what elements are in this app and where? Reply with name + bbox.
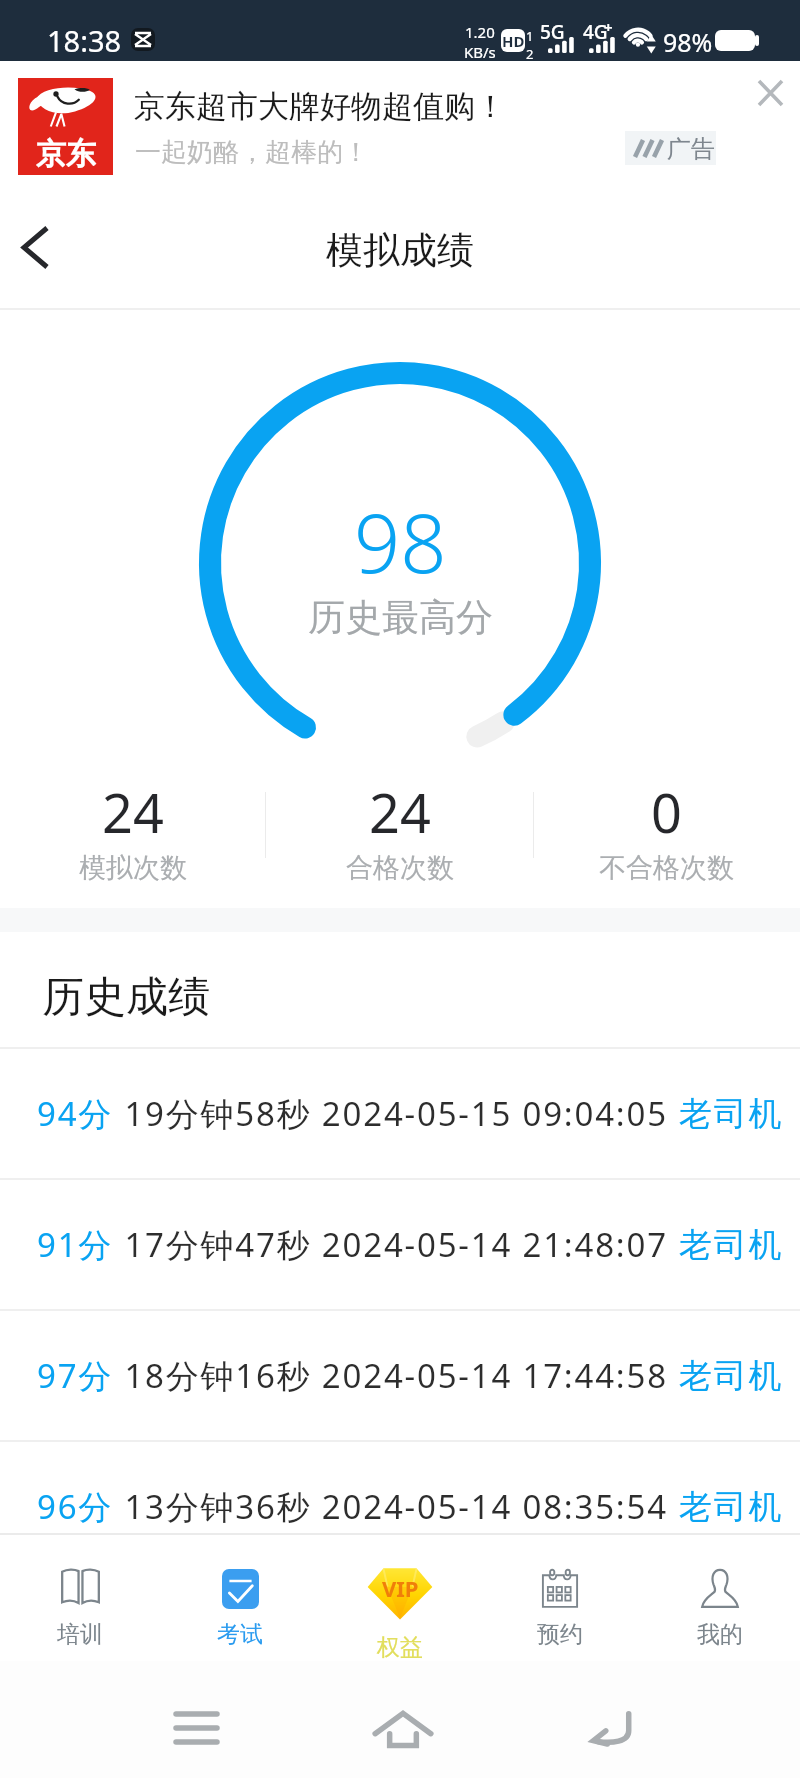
staticText: 广告 xyxy=(667,134,715,164)
staticText: KB/s xyxy=(464,42,496,62)
staticText: 17分钟47秒 2024-05-14 21:48:07 xyxy=(114,1222,679,1267)
staticText: 98% xyxy=(663,25,713,59)
staticText: 不合格次数 xyxy=(599,851,734,885)
button[interactable]: Back xyxy=(571,1687,651,1767)
staticText: 培训 xyxy=(57,1620,103,1649)
staticText: 老司机 xyxy=(679,1224,784,1266)
button[interactable]: 培训 xyxy=(0,1535,160,1661)
staticText: 98 xyxy=(354,486,447,596)
staticText: 4G xyxy=(583,19,608,45)
staticText: 老司机 xyxy=(679,1093,784,1135)
button[interactable]: 94分 xyxy=(0,1048,800,1178)
staticText: VIP xyxy=(382,1573,419,1603)
staticText: 合格次数 xyxy=(346,851,454,885)
button[interactable]: Recent apps xyxy=(156,1688,236,1768)
button[interactable]: 97分 xyxy=(0,1310,800,1440)
staticText: 历史成绩 xyxy=(42,971,210,1024)
button[interactable]: 24 xyxy=(266,775,533,885)
staticText: 94分 xyxy=(37,1091,114,1136)
button[interactable]: Close ad xyxy=(744,67,796,119)
button[interactable]: 我的 xyxy=(640,1535,800,1661)
staticText: HD xyxy=(502,31,525,51)
staticText: + xyxy=(604,17,613,37)
button[interactable]: VIP xyxy=(320,1535,480,1661)
staticText: 1.20 xyxy=(465,22,495,42)
staticText: 19分钟58秒 2024-05-15 09:04:05 xyxy=(114,1091,679,1136)
staticText: 18:38 xyxy=(47,21,122,60)
staticText: 京东 xyxy=(36,135,96,173)
staticText: 0 xyxy=(651,775,682,849)
button[interactable]: 24 xyxy=(0,775,266,885)
staticText: 96分 xyxy=(37,1484,114,1529)
staticText: 18分钟16秒 2024-05-14 17:44:58 xyxy=(114,1353,679,1398)
button[interactable]: 91分 xyxy=(0,1179,800,1309)
staticText: 24 xyxy=(102,775,164,849)
staticText: 老司机 xyxy=(679,1355,784,1397)
staticText: 2 xyxy=(526,45,534,63)
button[interactable]: 0 xyxy=(533,775,800,885)
staticText: 模拟成绩 xyxy=(326,227,474,274)
button[interactable]: 96分 xyxy=(0,1441,800,1571)
staticText: 模拟次数 xyxy=(79,851,187,885)
staticText: 预约 xyxy=(537,1620,583,1649)
staticText: 老司机 xyxy=(679,1486,784,1528)
button[interactable]: 考试 xyxy=(160,1535,320,1661)
staticText: 权益 xyxy=(377,1633,423,1662)
staticText: 考试 xyxy=(217,1620,263,1649)
staticText: 1 xyxy=(526,27,534,45)
staticText: 历史最高分 xyxy=(308,594,493,641)
staticText: 一起奶酪，超棒的！ xyxy=(135,136,369,169)
button[interactable]: Back xyxy=(2,214,68,280)
staticText: 24 xyxy=(369,775,431,849)
staticText: 我的 xyxy=(697,1620,743,1649)
button[interactable]: 预约 xyxy=(480,1535,640,1661)
staticText: 13分钟36秒 2024-05-14 08:35:54 xyxy=(114,1484,679,1529)
staticText: 97分 xyxy=(37,1353,114,1398)
button[interactable]: Home xyxy=(363,1689,443,1769)
staticText: 京东超市大牌好物超值购！ xyxy=(134,87,506,126)
staticText: 5G xyxy=(540,19,565,45)
staticText: 91分 xyxy=(37,1222,114,1267)
